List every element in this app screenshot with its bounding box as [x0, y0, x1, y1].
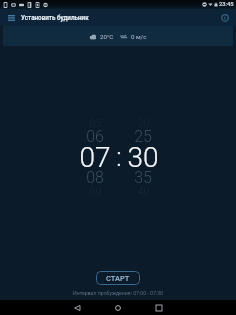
staticText: СТАРТ	[106, 274, 130, 283]
staticText: 23:45	[219, 1, 234, 8]
staticText: 25	[134, 127, 152, 146]
button[interactable]: 20°C	[3, 26, 233, 46]
staticText: 35	[134, 168, 152, 187]
staticText: 30	[127, 141, 159, 174]
staticText: 06	[86, 127, 104, 146]
button[interactable]: СТАРТ	[96, 271, 140, 285]
staticText: 20°C	[100, 33, 114, 40]
button[interactable]: 20	[125, 112, 161, 202]
button[interactable]: Open navigation drawer	[3, 10, 19, 26]
staticText: 0 м/с	[131, 33, 147, 40]
staticText: 40	[137, 185, 150, 198]
button[interactable]: Help	[217, 10, 233, 26]
button[interactable]: 05	[77, 112, 113, 202]
staticText: :	[116, 142, 122, 172]
staticText: Установить будильник	[21, 14, 89, 21]
staticText: Интервал пробуждения: 07:00 - 07:30	[73, 290, 163, 296]
staticText: 07	[79, 141, 111, 174]
button[interactable]: Back	[62, 300, 92, 315]
button[interactable]: Recent apps	[144, 300, 174, 315]
staticText: 08	[86, 168, 104, 187]
button[interactable]: Home	[103, 300, 133, 315]
